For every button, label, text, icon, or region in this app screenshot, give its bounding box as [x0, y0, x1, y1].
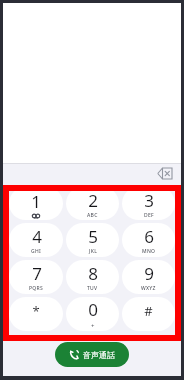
staticText: #	[144, 302, 153, 320]
staticText: JKL	[89, 248, 98, 255]
button[interactable]: 6	[122, 223, 175, 257]
staticText: PQRS	[29, 285, 44, 292]
staticText: *	[32, 302, 40, 320]
staticText: 6	[144, 225, 154, 248]
button[interactable]: 2	[66, 187, 119, 220]
staticText: MNO	[142, 248, 156, 255]
staticText: 音声通話	[83, 350, 115, 360]
staticText: TUV	[87, 285, 98, 292]
button[interactable]: 8	[66, 260, 119, 294]
staticText: 4	[32, 225, 42, 248]
button[interactable]: 4	[9, 223, 63, 257]
staticText: +	[91, 322, 95, 330]
staticText: WXYZ	[141, 285, 156, 292]
staticText: 3	[144, 189, 154, 212]
button[interactable]: 5	[66, 223, 119, 257]
button[interactable]: 3	[122, 187, 175, 220]
staticText: DEF	[144, 212, 154, 219]
button[interactable]: 9	[122, 260, 175, 294]
staticText: 0	[88, 298, 98, 321]
button[interactable]: 音声通話	[55, 342, 129, 367]
staticText: 2	[88, 189, 98, 212]
staticText: ABC	[87, 212, 98, 219]
button[interactable]: *	[9, 297, 63, 331]
staticText: 9	[144, 262, 154, 285]
button[interactable]: 1	[9, 187, 63, 220]
button[interactable]: 0	[66, 297, 119, 331]
button[interactable]: Backspace	[155, 166, 173, 181]
staticText: GHI	[31, 248, 42, 255]
staticText: 5	[88, 225, 98, 248]
staticText: 1	[31, 190, 41, 213]
button[interactable]: 7	[9, 260, 63, 294]
staticText: 8	[88, 262, 98, 285]
staticText: 7	[32, 262, 42, 285]
button[interactable]: #	[122, 297, 175, 331]
